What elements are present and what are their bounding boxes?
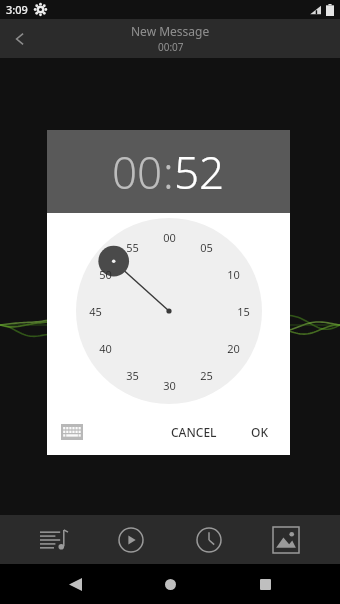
button[interactable]: Back: [55, 564, 95, 604]
staticText: 20: [227, 341, 240, 356]
staticText: 00: [163, 230, 176, 245]
staticText: OK: [251, 424, 268, 440]
button[interactable]: Back: [0, 19, 40, 58]
staticText: 3:09: [6, 2, 28, 17]
button[interactable]: OK: [243, 418, 276, 446]
staticText: 35: [126, 368, 139, 383]
button[interactable]: Image: [262, 516, 310, 564]
button[interactable]: CANCEL: [163, 418, 225, 446]
staticText: 45: [89, 304, 102, 319]
button[interactable]: 00: [112, 142, 163, 202]
staticText: :: [163, 142, 174, 202]
staticText: 30: [163, 378, 176, 393]
button[interactable]: Playlist: [30, 516, 78, 564]
staticText: 10: [227, 267, 240, 282]
button[interactable]: Recent apps: [245, 564, 285, 604]
button[interactable]: 52: [174, 142, 225, 202]
button[interactable]: Timer: [185, 516, 233, 564]
button[interactable]: Switch to keyboard input: [61, 424, 83, 440]
staticText: 40: [99, 341, 112, 356]
button[interactable]: Home: [150, 564, 190, 604]
staticText: 05: [200, 240, 213, 255]
staticText: CANCEL: [171, 424, 217, 440]
staticText: 00:07: [158, 40, 184, 54]
staticText: 55: [126, 240, 139, 255]
button[interactable]: Play: [107, 516, 155, 564]
staticText: 15: [237, 304, 250, 319]
staticText: 25: [200, 368, 213, 383]
staticText: 50: [99, 267, 112, 282]
staticText: New Message: [131, 23, 210, 39]
